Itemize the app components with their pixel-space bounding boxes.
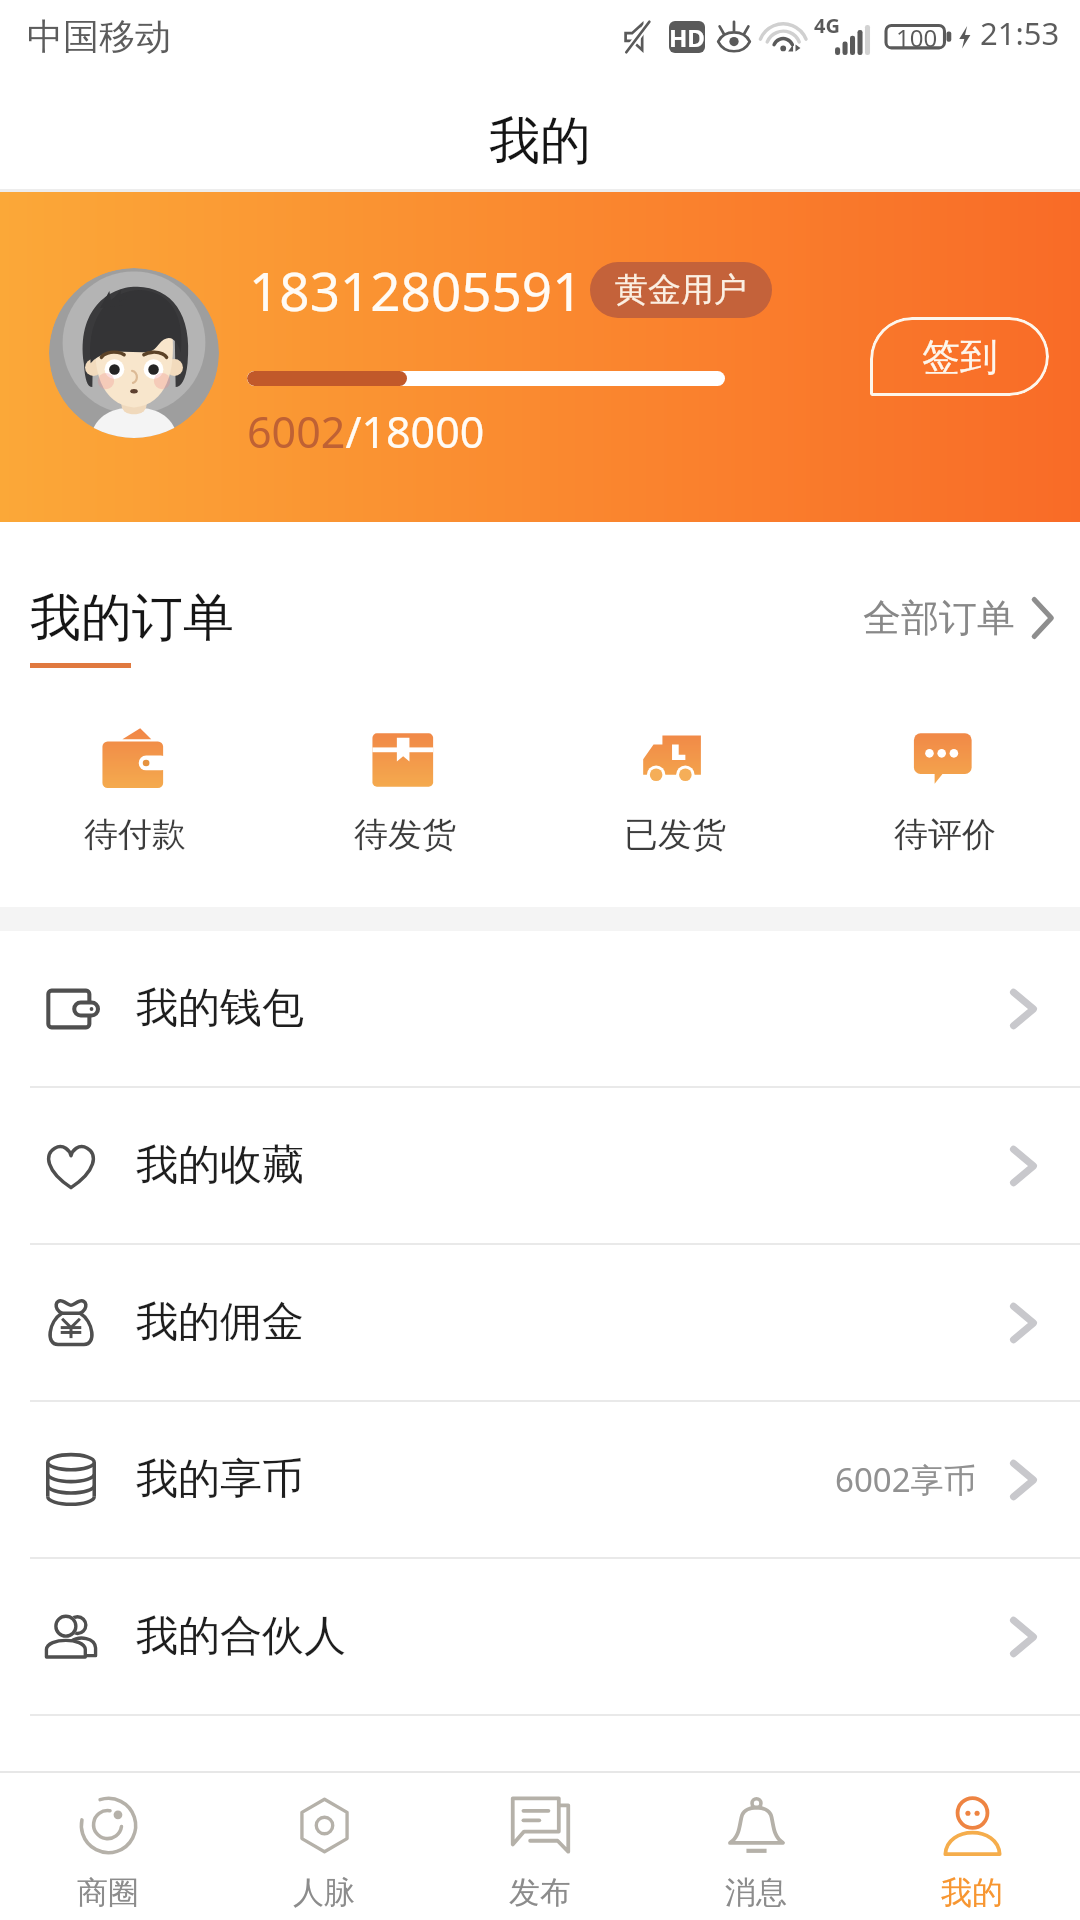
staticText: 消息 [725,1873,787,1912]
button[interactable]: 全部订单 [863,594,1054,642]
staticText: 6002享币 [835,1457,977,1502]
button[interactable]: 待发货 [270,723,540,856]
staticText: 待付款 [84,813,186,856]
staticText: 我的钱包 [136,982,304,1035]
staticText: 全部订单 [863,594,1015,642]
button[interactable]: 消息 [648,1773,864,1920]
button[interactable]: 已发货 [540,723,810,856]
staticText: 签到 [922,333,998,381]
staticText: 待评价 [894,813,996,856]
button[interactable]: 我的合伙人 [0,1559,1080,1716]
staticText: 待发货 [354,813,456,856]
staticText: 我的收藏 [136,1139,304,1192]
button[interactable]: 头像 [49,268,219,438]
staticText: 商圈 [77,1873,139,1912]
staticText: 我的 [941,1873,1003,1912]
button[interactable]: 我的佣金 [0,1245,1080,1402]
staticText: 100 [896,21,938,54]
button[interactable]: 黄金用户 [590,262,772,318]
staticText: 人脉 [293,1873,355,1912]
button[interactable]: 发布 [432,1773,648,1920]
staticText: 发布 [509,1873,571,1912]
button[interactable]: 我的钱包 [0,931,1080,1088]
staticText: 黄金用户 [615,269,747,311]
staticText: 我的享币 [136,1453,304,1506]
staticText: 我的合伙人 [136,1610,346,1663]
staticText: 中国移动 [27,14,171,59]
button[interactable]: 签到 [870,317,1049,396]
button[interactable]: 商圈 [0,1773,216,1920]
staticText: 我的订单 [30,586,234,650]
button[interactable]: 我的 [864,1773,1080,1920]
staticText: 我的 [489,109,591,173]
staticText: 6002/18000 [247,402,485,461]
button[interactable]: 我的收藏 [0,1088,1080,1245]
staticText: 21:53 [980,12,1060,54]
button[interactable]: 待付款 [0,723,270,856]
staticText: HD [669,21,705,53]
staticText: 我的佣金 [136,1296,304,1349]
button[interactable]: 待评价 [810,723,1080,856]
staticText: 已发货 [624,813,726,856]
staticText: 4G [814,12,840,39]
button[interactable]: 人脉 [216,1773,432,1920]
staticText: 18312805591 [249,254,583,326]
button[interactable]: 我的享币 [0,1402,1080,1559]
